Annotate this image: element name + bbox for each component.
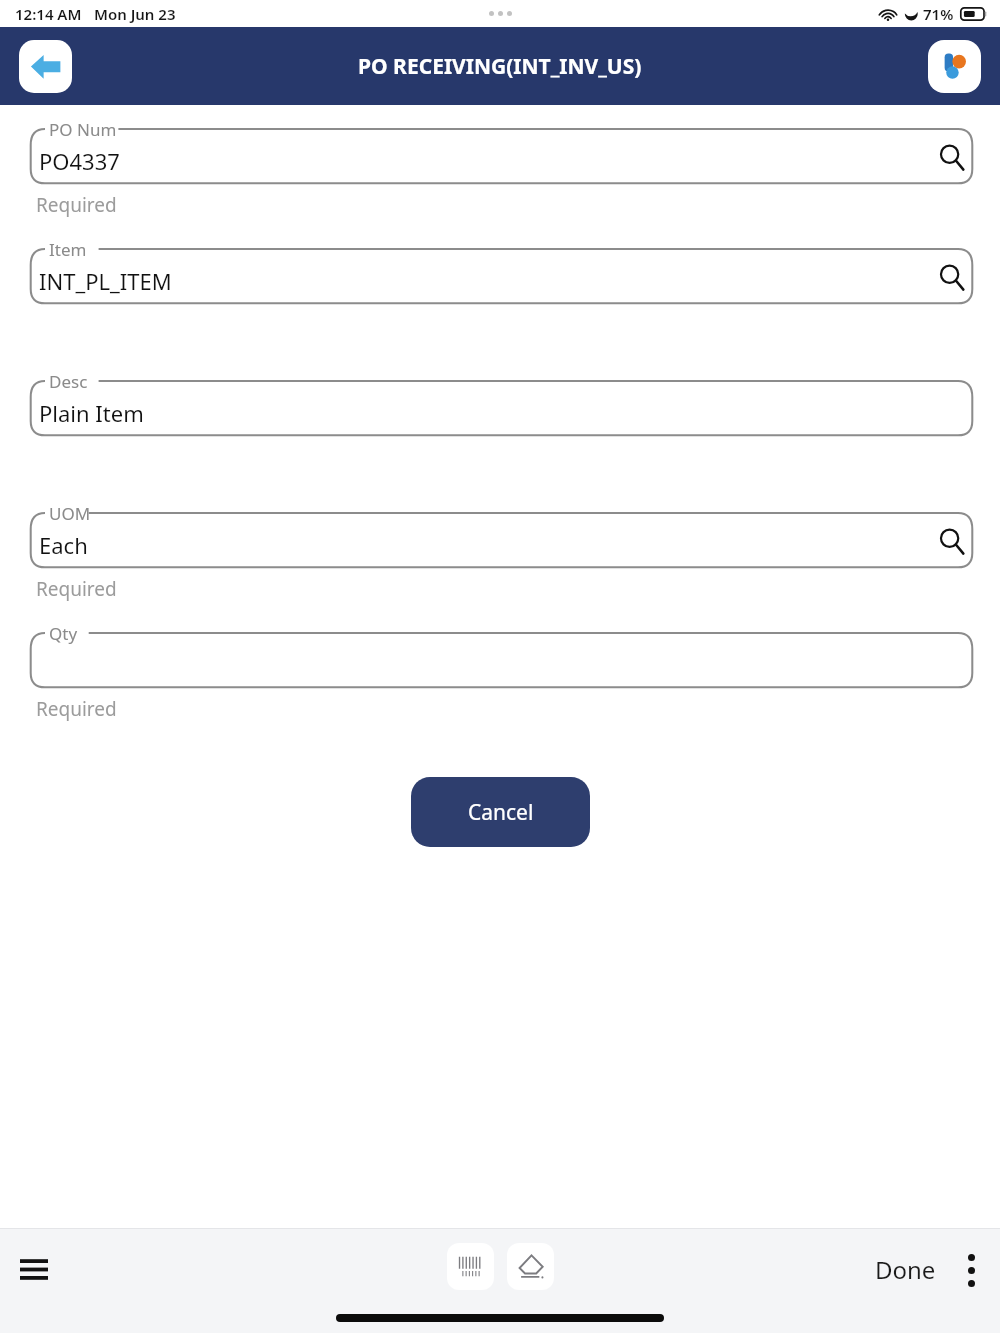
staticText: Required: [36, 696, 117, 722]
staticText: Required: [36, 192, 117, 218]
button[interactable]: Search UOM: [928, 518, 974, 564]
staticText: Plain Item: [39, 398, 144, 428]
staticText: Mon Jun 23: [94, 4, 176, 24]
button[interactable]: Search Item: [928, 254, 974, 300]
staticText: Each: [39, 530, 88, 560]
button[interactable]: Item: [29, 239, 974, 305]
button[interactable]: Cancel: [411, 777, 590, 847]
staticText: 12:14 AM: [15, 4, 82, 24]
staticText: PO Num: [49, 118, 117, 141]
button[interactable]: PO Num: [29, 119, 974, 185]
button[interactable]: App logo: [928, 40, 981, 93]
button[interactable]: Done: [868, 1245, 943, 1294]
button[interactable]: Erase: [507, 1243, 554, 1290]
button[interactable]: Scan barcode: [447, 1243, 494, 1290]
staticText: Cancel: [468, 798, 534, 827]
staticText: Desc: [49, 370, 88, 393]
staticText: Item: [49, 238, 87, 261]
staticText: Done: [875, 1253, 936, 1286]
button[interactable]: Menu: [8, 1243, 60, 1295]
staticText: PO RECEIVING(INT_INV_US): [358, 52, 642, 81]
button[interactable]: More options: [950, 1249, 992, 1291]
staticText: INT_PL_ITEM: [39, 266, 172, 296]
staticText: PO4337: [39, 146, 120, 176]
staticText: UOM: [49, 502, 91, 525]
staticText: Qty: [49, 622, 78, 645]
button[interactable]: Back: [19, 40, 72, 93]
staticText: 71%: [923, 4, 954, 24]
button[interactable]: Qty: [29, 623, 974, 689]
button[interactable]: Search PO Num: [928, 134, 974, 180]
button[interactable]: UOM: [29, 503, 974, 569]
staticText: Required: [36, 576, 117, 602]
button[interactable]: Desc: [29, 371, 974, 437]
